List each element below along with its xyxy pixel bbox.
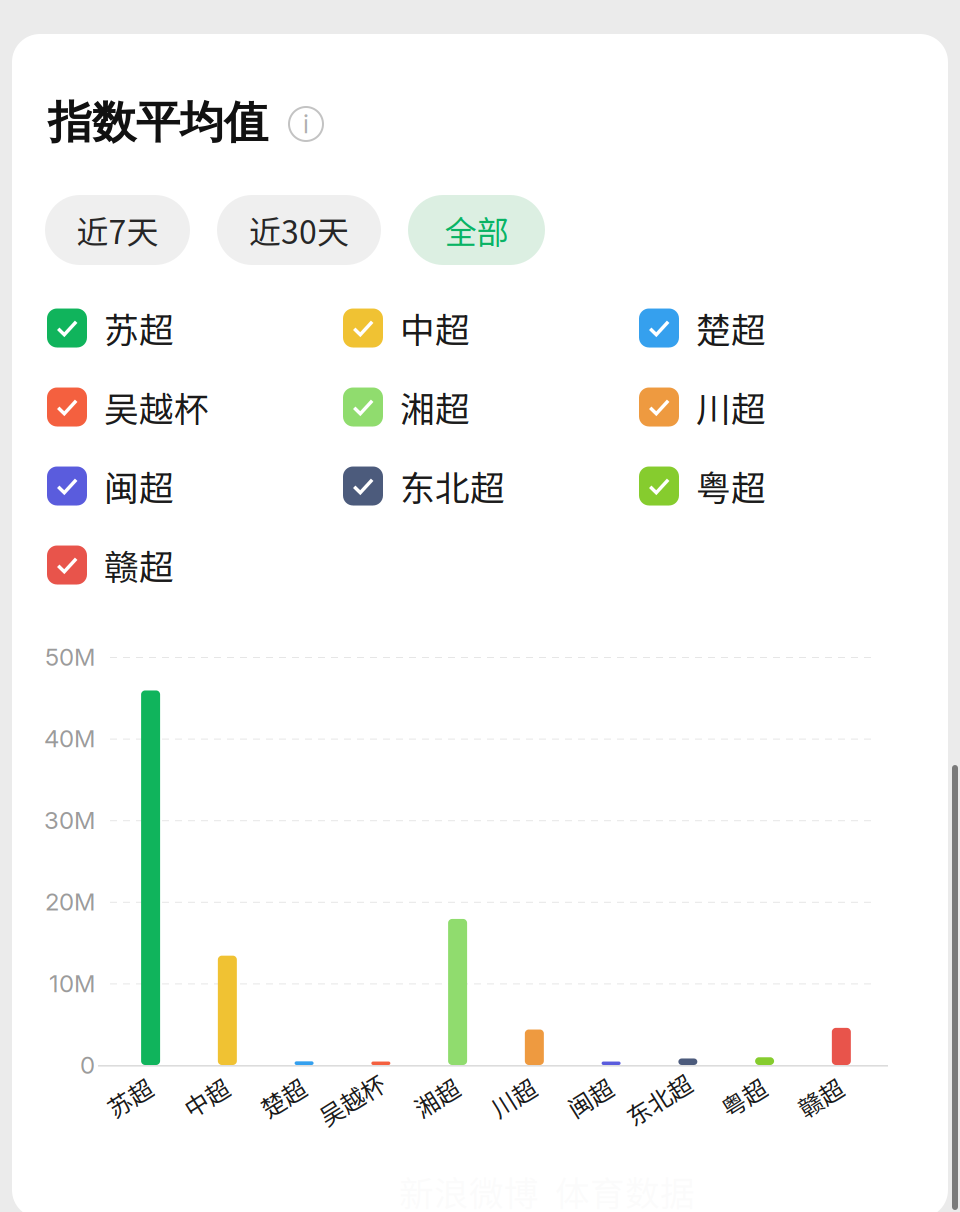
- staticText: 闽超: [566, 1080, 614, 1115]
- staticText: 苏超: [104, 303, 174, 353]
- button[interactable]: 湘超: [343, 383, 639, 431]
- staticText: 闽超: [104, 461, 174, 511]
- staticText: 吴越杯: [104, 382, 209, 432]
- button[interactable]: 中超: [343, 304, 639, 352]
- staticText: 东北超: [623, 1082, 695, 1117]
- staticText: 中超: [182, 1080, 230, 1115]
- staticText: 湘超: [400, 382, 470, 432]
- staticText: 30M: [44, 806, 95, 835]
- staticText: 粤超: [696, 461, 766, 511]
- staticText: 10M: [49, 969, 95, 998]
- button[interactable]: 吴越杯: [47, 383, 343, 431]
- button[interactable]: 近30天: [217, 195, 381, 265]
- staticText: 湘超: [413, 1080, 461, 1115]
- button[interactable]: 东北超: [343, 462, 639, 510]
- button[interactable]: 楚超: [639, 304, 935, 352]
- staticText: 楚超: [696, 303, 766, 353]
- staticText: 近7天: [76, 207, 158, 253]
- staticText: 吴越杯: [316, 1082, 388, 1117]
- staticText: 指数平均值: [48, 95, 268, 150]
- staticText: 川超: [696, 382, 766, 432]
- staticText: 20M: [45, 887, 95, 916]
- staticText: 中超: [400, 303, 470, 353]
- button[interactable]: 全部: [408, 195, 545, 265]
- staticText: 苏超: [106, 1080, 154, 1115]
- staticText: 0: [80, 1050, 95, 1079]
- staticText: 粤超: [720, 1080, 768, 1115]
- button[interactable]: 闽超: [47, 462, 343, 510]
- staticText: 全部: [444, 207, 508, 253]
- staticText: 40M: [44, 724, 95, 753]
- staticText: 50M: [45, 642, 95, 671]
- staticText: 川超: [489, 1080, 537, 1115]
- button[interactable]: 指标说明: [285, 103, 327, 145]
- staticText: 楚超: [259, 1080, 307, 1115]
- staticText: 近30天: [249, 207, 349, 253]
- button[interactable]: 川超: [639, 383, 935, 431]
- button[interactable]: 苏超: [47, 304, 343, 352]
- button[interactable]: 近7天: [45, 195, 190, 265]
- button[interactable]: 粤超: [639, 462, 935, 510]
- staticText: 赣超: [796, 1080, 844, 1115]
- button[interactable]: 赣超: [47, 541, 343, 589]
- staticText: 东北超: [400, 461, 505, 511]
- staticText: i: [303, 109, 309, 139]
- staticText: 赣超: [104, 540, 174, 590]
